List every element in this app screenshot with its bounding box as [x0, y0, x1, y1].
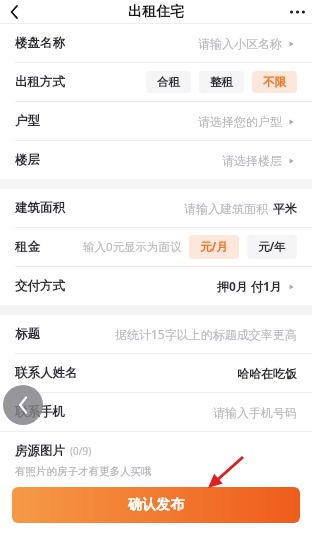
staticText: 整租: [210, 75, 233, 89]
staticText: 出租方式: [15, 74, 65, 90]
staticText: 楼盘名称: [15, 35, 65, 51]
staticText: 交付方式: [15, 278, 65, 294]
staticText: 出租住宅: [128, 3, 184, 21]
staticText: 请输入小区名称: [198, 36, 282, 51]
staticText: 请输入建筑面积: [184, 201, 268, 216]
staticText: 楼层: [15, 152, 40, 168]
button[interactable]: 楼层: [0, 141, 312, 179]
staticText: 押0月 付1月: [217, 278, 282, 294]
button[interactable]: Back: [0, 0, 28, 23]
button[interactable]: 确认发布: [12, 487, 300, 523]
button[interactable]: 元/月: [189, 235, 239, 259]
staticText: (0/9): [70, 444, 92, 458]
button[interactable]: 合租: [146, 71, 191, 93]
staticText: 合租: [157, 75, 180, 89]
staticText: 确认发布: [128, 496, 184, 514]
button[interactable]: Back: [3, 385, 43, 425]
staticText: 不限: [263, 75, 286, 89]
staticText: 建筑面积: [15, 200, 65, 216]
staticText: 户型: [15, 113, 40, 129]
button[interactable]: More options: [282, 0, 312, 23]
button[interactable]: 户型: [0, 102, 312, 140]
button[interactable]: 联系人姓名: [0, 354, 312, 392]
staticText: 有照片的房子才有更多人买哦: [15, 465, 152, 478]
staticText: 据统计15字以上的标题成交率更高: [115, 326, 297, 342]
staticText: 请选择您的户型: [198, 114, 282, 129]
button[interactable]: 交付方式: [0, 267, 312, 305]
button[interactable]: 楼盘名称: [0, 24, 312, 62]
staticText: 哈哈在吃饭: [237, 366, 297, 381]
staticText: 请输入手机号码: [213, 405, 297, 420]
staticText: 元/月: [200, 239, 228, 255]
button[interactable]: 标题: [0, 315, 312, 353]
staticText: 租金: [15, 239, 40, 255]
staticText: 请选择楼层: [222, 153, 282, 168]
staticText: 联系人姓名: [15, 365, 78, 381]
staticText: 输入0元显示为面议: [83, 239, 182, 255]
button[interactable]: 元/年: [247, 235, 297, 259]
staticText: 平米: [273, 201, 297, 216]
button[interactable]: 联系手机: [0, 393, 312, 431]
staticText: 联系手机: [15, 404, 65, 420]
staticText: 元/年: [258, 239, 286, 255]
staticText: 房源图片: [15, 443, 65, 459]
button[interactable]: 建筑面积: [0, 189, 312, 227]
button[interactable]: 整租: [199, 71, 244, 93]
staticText: 标题: [15, 326, 40, 342]
button[interactable]: 不限: [252, 71, 297, 93]
